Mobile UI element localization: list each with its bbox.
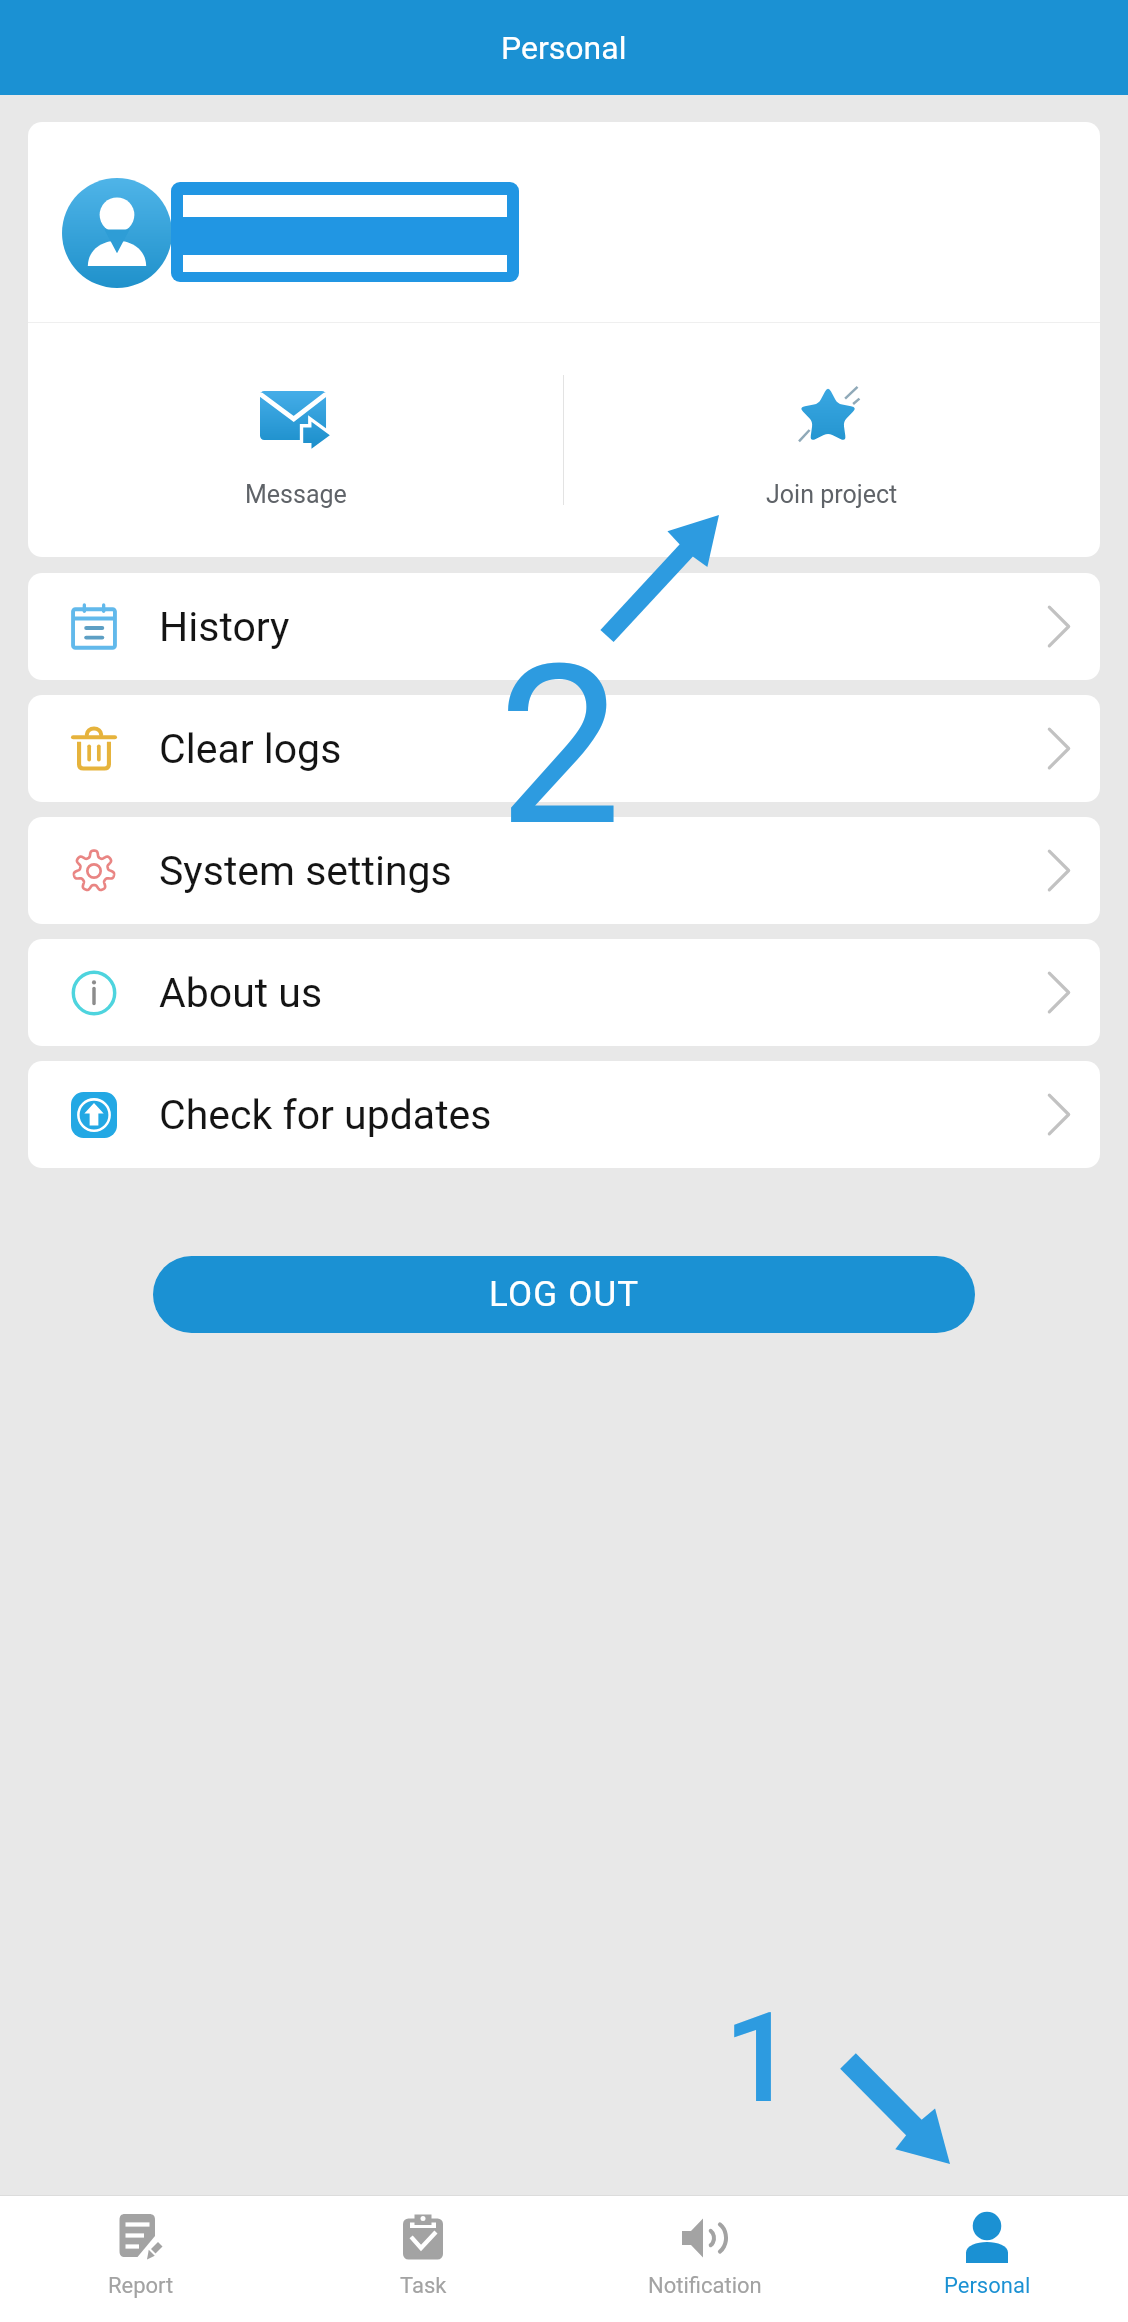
- staticText: Message: [245, 480, 347, 509]
- button[interactable]: Message: [28, 323, 563, 557]
- staticText: System settings: [159, 847, 452, 895]
- button[interactable]: Task: [282, 2196, 564, 2322]
- button[interactable]: System settings: [28, 817, 1100, 924]
- staticText: Personal: [944, 2273, 1031, 2299]
- staticText: 1: [724, 1985, 796, 2131]
- button[interactable]: Check for updates: [28, 1061, 1100, 1168]
- button[interactable]: Report: [0, 2196, 282, 2322]
- staticText: Personal: [501, 29, 627, 67]
- staticText: Join project: [766, 480, 898, 509]
- staticText: History: [159, 603, 290, 651]
- staticText: Notification: [648, 2273, 762, 2299]
- staticText: About us: [159, 969, 323, 1017]
- staticText: LOG OUT: [489, 1274, 640, 1315]
- button[interactable]: About us: [28, 939, 1100, 1046]
- staticText: Task: [400, 2273, 447, 2299]
- button[interactable]: Clear logs: [28, 695, 1100, 802]
- button[interactable]: Join project: [564, 323, 1100, 557]
- staticText: Clear logs: [159, 725, 342, 773]
- button[interactable]: Personal: [846, 2196, 1128, 2322]
- button[interactable]: Notification: [564, 2196, 846, 2322]
- button[interactable]: LOG OUT: [153, 1256, 975, 1333]
- button[interactable]: History: [28, 573, 1100, 680]
- staticText: Report: [108, 2273, 174, 2299]
- button[interactable]: Profile: [28, 122, 1100, 322]
- staticText: 2: [498, 618, 622, 876]
- staticText: Check for updates: [159, 1091, 492, 1139]
